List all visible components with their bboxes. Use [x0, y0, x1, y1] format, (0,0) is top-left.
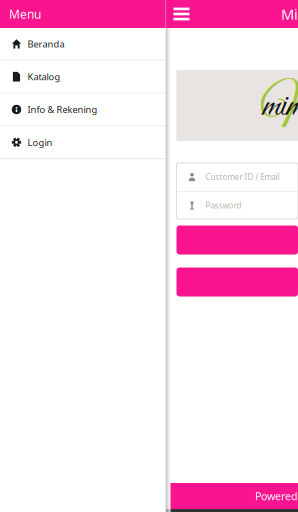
button[interactable] — [176, 225, 298, 254]
button[interactable]: Katalog — [0, 61, 166, 94]
staticText: Katalog — [27, 70, 60, 83]
staticText: M — [259, 76, 298, 146]
button[interactable]: Beranda — [0, 28, 166, 61]
staticText: Beranda — [27, 38, 64, 50]
button[interactable] — [176, 267, 298, 296]
staticText: Menu — [9, 6, 41, 22]
staticText: Mi — [281, 4, 298, 24]
staticText: Login — [27, 136, 52, 148]
staticText: Customer ID / Email — [205, 172, 279, 182]
staticText: mim — [262, 84, 298, 129]
button[interactable]: Login — [0, 126, 166, 159]
staticText: Password — [205, 200, 241, 211]
staticText: Powered — [255, 489, 298, 503]
button[interactable]: Info & Rekening — [0, 94, 166, 126]
button[interactable]: Open menu — [166, 0, 197, 28]
staticText: Info & Rekening — [27, 103, 97, 116]
